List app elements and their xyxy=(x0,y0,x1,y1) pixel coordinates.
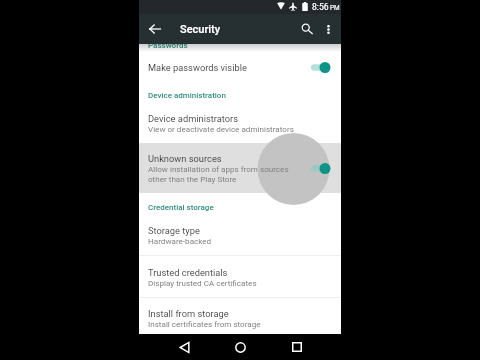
button[interactable]: Trusted credentials xyxy=(139,264,341,291)
button[interactable]: Recents xyxy=(284,334,310,360)
button[interactable]: Device administrators xyxy=(139,110,341,137)
staticText: Install certificates from storage xyxy=(148,319,261,328)
button[interactable]: Back xyxy=(171,334,197,360)
button[interactable]: Storage type xyxy=(139,222,341,249)
button[interactable]: Search xyxy=(296,18,318,40)
button[interactable]: Install from storage xyxy=(139,305,341,332)
button[interactable]: Home xyxy=(227,334,253,360)
staticText: Unknown sources xyxy=(148,153,222,164)
staticText: Passwords xyxy=(148,41,188,50)
staticText: Trusted credentials xyxy=(148,267,228,278)
staticText: Device administration xyxy=(148,91,226,100)
staticText: PM xyxy=(330,4,340,12)
button[interactable]: More options xyxy=(318,19,338,39)
staticText: Install from storage xyxy=(148,308,229,319)
button[interactable] xyxy=(139,143,341,193)
button[interactable]: Make passwords visible xyxy=(139,50,341,84)
staticText: Make passwords visible xyxy=(148,62,247,73)
staticText: Credential storage xyxy=(148,203,214,212)
staticText: Hardware-backed xyxy=(148,236,212,245)
staticText: Security xyxy=(180,23,221,36)
staticText: 8:56 xyxy=(312,2,329,12)
staticText: Display trusted CA certificates xyxy=(148,278,257,287)
staticText: Device administrators xyxy=(148,113,239,124)
staticText: Allow installation of apps from sources … xyxy=(148,164,289,184)
button[interactable]: Back xyxy=(144,18,166,40)
staticText: View or deactivate device administrators xyxy=(148,124,294,133)
staticText: Storage type xyxy=(148,225,200,236)
